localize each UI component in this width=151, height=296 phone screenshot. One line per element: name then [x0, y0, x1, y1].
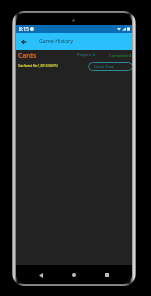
staticText: Players: 4: [77, 52, 95, 57]
button[interactable]: Home: [66, 267, 82, 283]
staticText: 8:15: [19, 26, 29, 33]
button[interactable]: Recents: [99, 267, 115, 283]
staticText: Cards: [18, 51, 37, 60]
staticText: Date Started: Mar 1, 2021 8:15:00 PM: [18, 64, 58, 68]
staticText: Quick View: [94, 64, 114, 69]
staticText: Game History: [39, 37, 73, 44]
button[interactable]: Cards: [16, 50, 132, 73]
button[interactable]: Quick View: [88, 62, 132, 71]
button[interactable]: Back: [33, 267, 49, 283]
staticText: Completed: [109, 52, 132, 58]
button[interactable]: Back: [18, 36, 30, 48]
